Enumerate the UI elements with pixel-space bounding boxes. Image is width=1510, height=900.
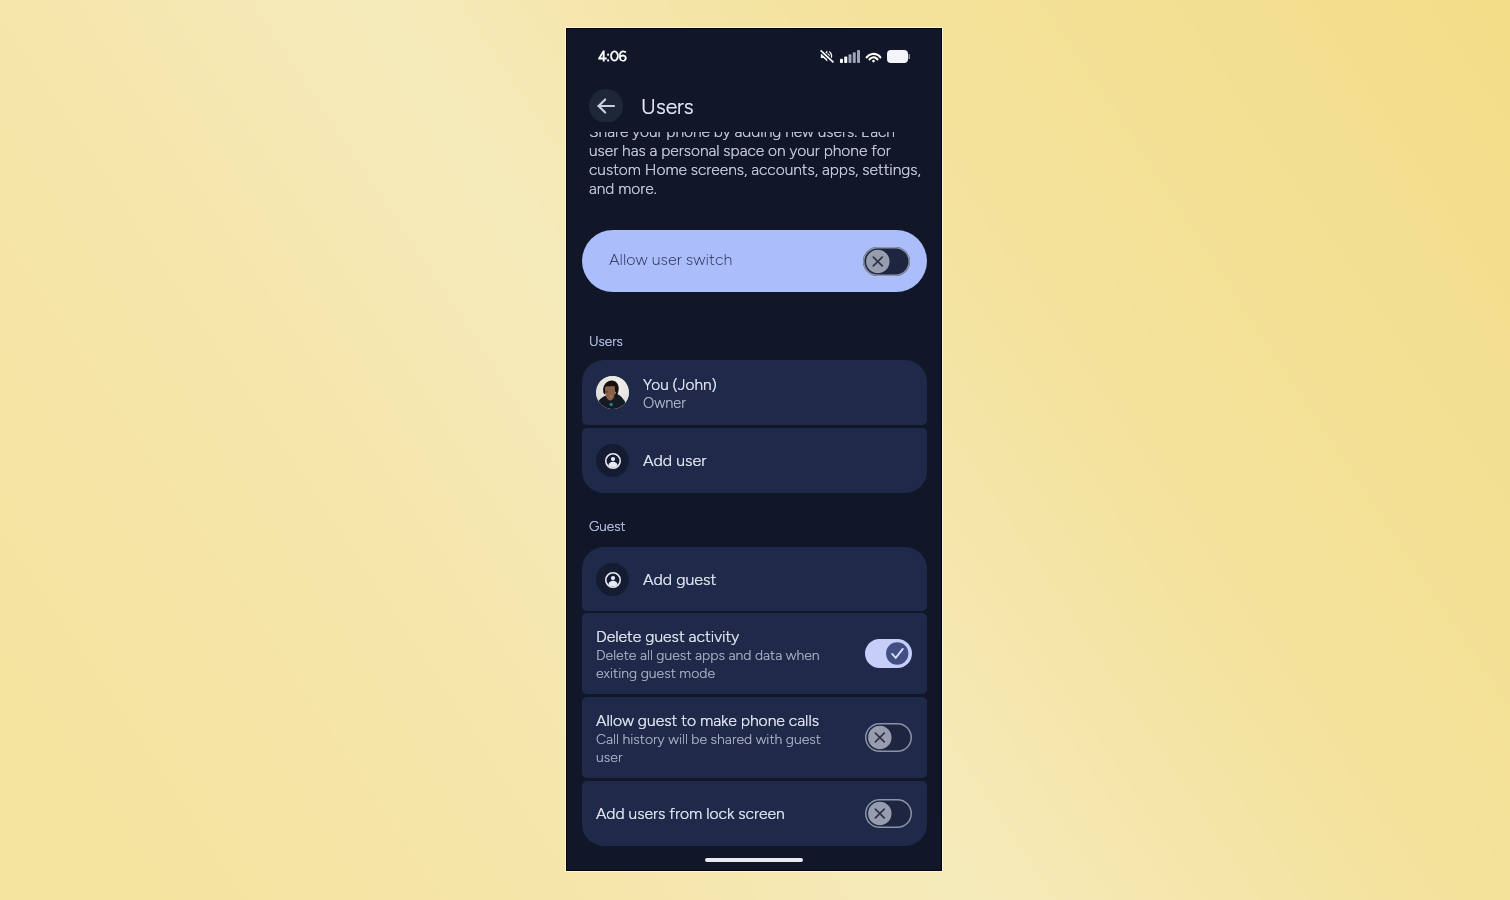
- staticText: Share your phone by adding new users. Ea…: [589, 122, 926, 198]
- staticText: Delete all guest apps and data when exit…: [596, 647, 836, 681]
- staticText: Add user: [643, 451, 707, 470]
- button[interactable]: You (John): [582, 360, 927, 425]
- staticText: Users: [589, 333, 623, 349]
- staticText: Call history will be shared with guest u…: [596, 731, 836, 765]
- staticText: Users: [641, 94, 694, 119]
- staticText: Owner: [643, 394, 686, 411]
- button[interactable]: Add users from lock screen: [582, 781, 927, 846]
- staticText: 4:06: [598, 48, 627, 65]
- staticText: Add users from lock screen: [596, 804, 785, 823]
- staticText: Allow user switch: [609, 250, 733, 269]
- staticText: Guest: [589, 518, 626, 534]
- staticText: Add guest: [643, 570, 717, 589]
- button[interactable]: Add user: [582, 428, 927, 493]
- staticText: Delete guest activity: [596, 627, 740, 646]
- staticText: You (John): [643, 375, 717, 393]
- button[interactable]: Toggle off: [865, 799, 912, 828]
- button[interactable]: Back: [589, 89, 623, 123]
- button[interactable]: Toggle off: [863, 247, 910, 276]
- button[interactable]: Add guest: [582, 547, 927, 611]
- button[interactable]: Toggle off: [865, 723, 912, 752]
- button[interactable]: Allow guest to make phone calls: [582, 697, 927, 778]
- button[interactable]: Allow user switch: [582, 230, 927, 292]
- button[interactable]: Delete guest activity: [582, 613, 927, 694]
- button[interactable]: Toggle on: [865, 639, 912, 668]
- staticText: Allow guest to make phone calls: [596, 711, 819, 730]
